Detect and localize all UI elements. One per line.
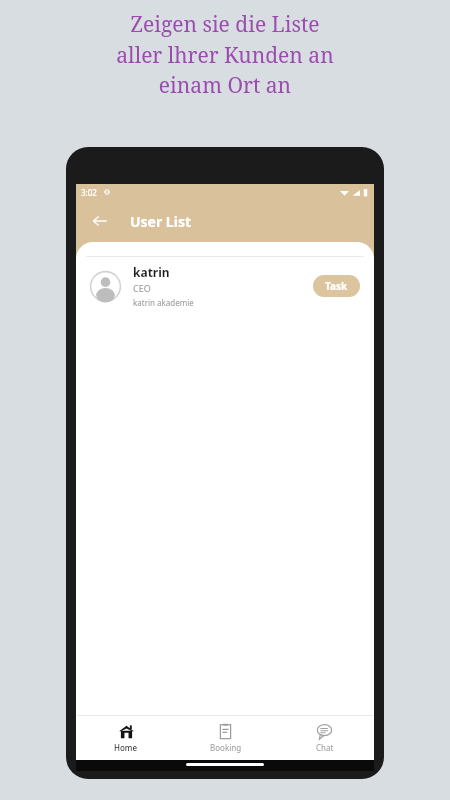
staticText: katrin bbox=[133, 264, 170, 280]
staticText: CEO bbox=[133, 282, 151, 294]
staticText: Home bbox=[114, 742, 138, 753]
staticText: Zeigen sie die Liste aller lhrer Kunden … bbox=[116, 10, 334, 99]
staticText: Booking bbox=[210, 742, 242, 753]
staticText: Task bbox=[325, 279, 348, 293]
button[interactable]: katrin bbox=[76, 257, 374, 315]
button[interactable]: Booking bbox=[176, 716, 275, 760]
button[interactable]: Back bbox=[87, 208, 113, 234]
staticText: User List bbox=[130, 212, 191, 231]
button[interactable]: Task bbox=[313, 275, 360, 297]
staticText: 3:02 bbox=[81, 187, 97, 198]
button[interactable]: Home bbox=[76, 716, 176, 760]
button[interactable]: Chat bbox=[275, 716, 374, 760]
staticText: katrin akademie bbox=[133, 297, 194, 308]
staticText: Chat bbox=[316, 742, 334, 753]
